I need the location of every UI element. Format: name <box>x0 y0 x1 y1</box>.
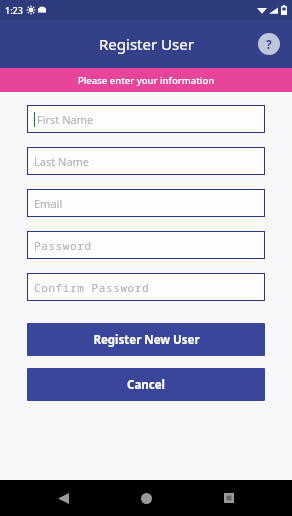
staticText: Cancel <box>127 377 165 393</box>
staticText: Confirm Password <box>34 280 150 295</box>
button[interactable]: Back <box>43 480 83 516</box>
staticText: Email <box>34 196 63 211</box>
button[interactable]: First Name <box>27 105 265 133</box>
button[interactable]: Register New User <box>27 323 265 356</box>
staticText: Register New User <box>93 332 200 348</box>
button[interactable]: Confirm Password <box>27 273 265 301</box>
button[interactable]: Password <box>27 231 265 259</box>
staticText: First Name <box>37 112 94 127</box>
staticText: ? <box>266 36 272 52</box>
staticText: 1:23 <box>5 4 23 16</box>
button[interactable]: Cancel <box>27 368 265 401</box>
button[interactable]: Last Name <box>27 147 265 175</box>
button[interactable]: Home <box>126 480 166 516</box>
button[interactable]: Help <box>257 32 281 56</box>
staticText: Last Name <box>34 154 90 169</box>
staticText: Register User <box>99 34 194 54</box>
staticText: Password <box>34 238 92 253</box>
button[interactable]: Email <box>27 189 265 217</box>
staticText: Please enter your information <box>78 74 215 87</box>
button[interactable]: Recent apps <box>209 480 249 516</box>
